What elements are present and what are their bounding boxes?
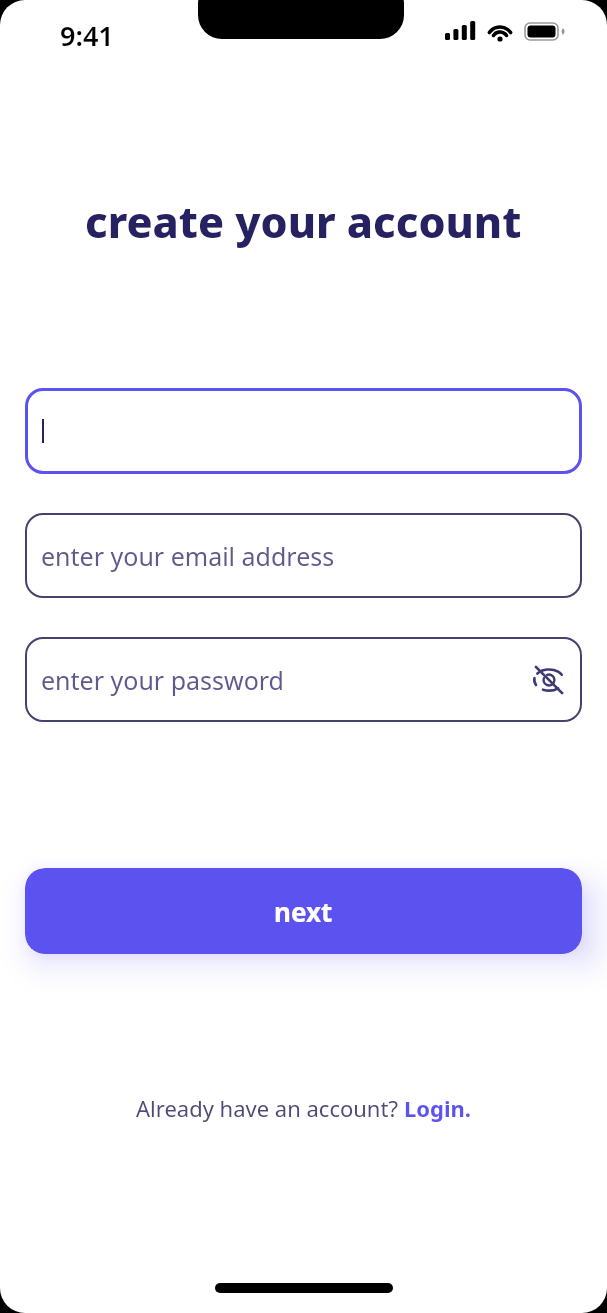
staticText: Already have an account? <box>136 1093 404 1123</box>
staticText: create your account <box>85 192 522 251</box>
staticText: next <box>274 894 333 929</box>
button[interactable]: enter your password <box>25 637 582 722</box>
staticText: enter your password <box>41 663 284 697</box>
button[interactable]: Login. <box>404 1093 472 1123</box>
staticText: 9:41 <box>60 17 114 47</box>
button[interactable] <box>25 388 582 474</box>
button[interactable]: enter your email address <box>25 513 582 598</box>
staticText: enter your email address <box>41 539 335 573</box>
button[interactable] <box>533 664 565 696</box>
button[interactable]: next <box>25 868 582 954</box>
